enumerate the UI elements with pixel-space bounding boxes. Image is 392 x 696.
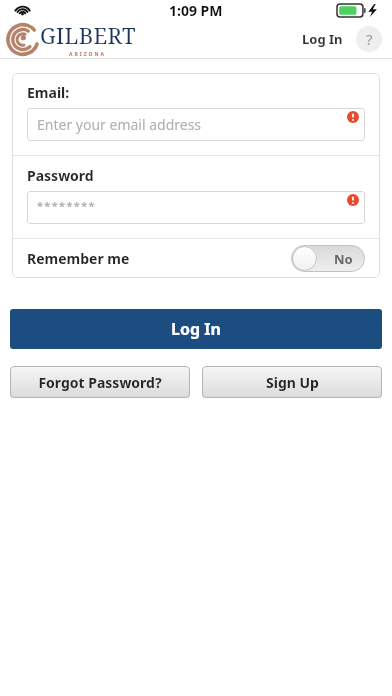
staticText: Password: [27, 166, 94, 185]
button[interactable]: Remember me: [12, 239, 380, 278]
other: Wi-Fi: [13, 2, 32, 18]
button[interactable]: Sign Up: [202, 366, 382, 398]
staticText: No: [334, 250, 353, 268]
button[interactable]: Help: [356, 26, 382, 52]
staticText: Forgot Password?: [38, 373, 162, 392]
staticText: ARIZONA: [69, 51, 107, 58]
staticText: Email:: [27, 83, 70, 102]
staticText: ?: [366, 29, 373, 49]
staticText: 1:09 PM: [169, 1, 223, 20]
other: Battery charging: [337, 4, 385, 17]
button[interactable]: Forgot Password?: [10, 366, 190, 398]
staticText: ********: [37, 198, 96, 213]
button[interactable]: Log In: [294, 23, 351, 55]
staticText: Remember me: [27, 249, 130, 268]
staticText: GILBERT: [40, 20, 136, 50]
button[interactable]: Remember me, off: [291, 245, 365, 272]
staticText: Sign Up: [266, 373, 319, 392]
staticText: Enter your email address: [37, 115, 202, 134]
button[interactable]: Log In: [10, 309, 382, 349]
button[interactable]: Email:: [27, 108, 365, 141]
staticText: Log In: [302, 30, 343, 48]
staticText: Log In: [171, 318, 221, 340]
button[interactable]: Password: [27, 191, 365, 224]
